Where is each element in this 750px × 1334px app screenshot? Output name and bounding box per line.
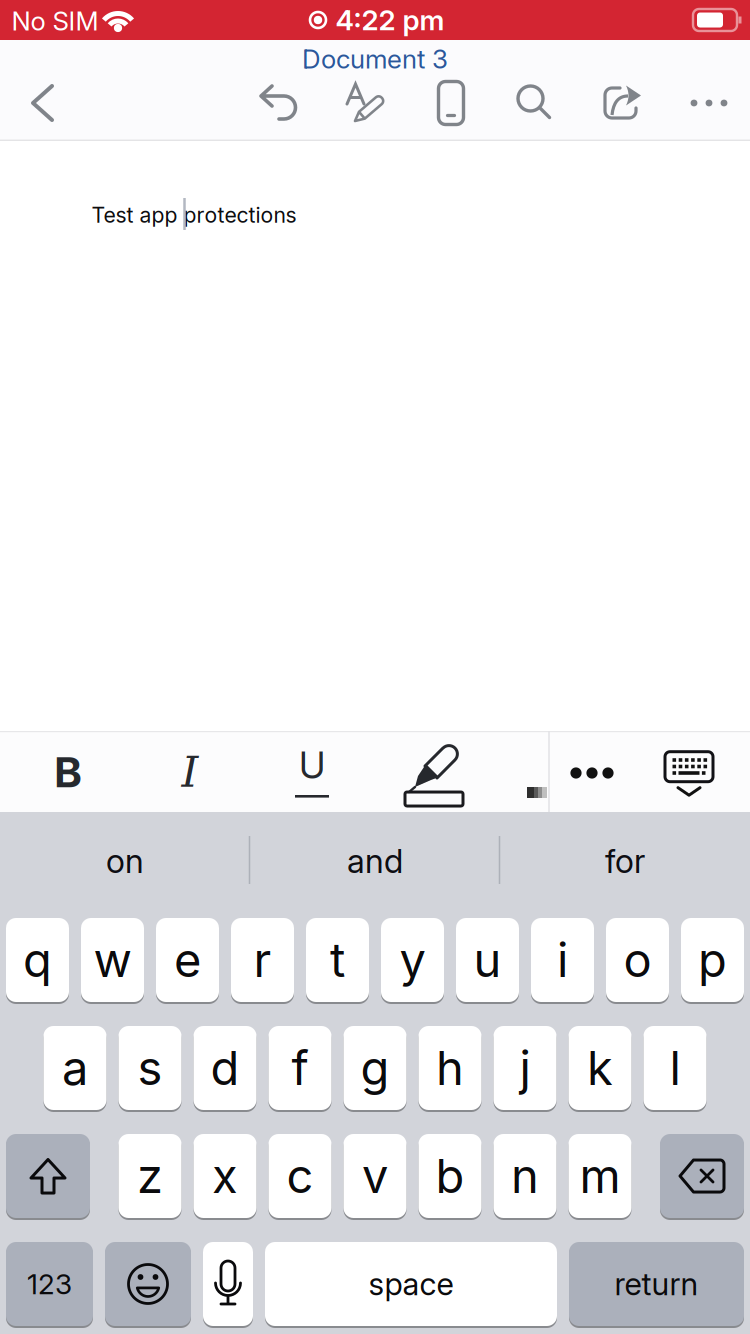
staticText: for: [605, 841, 645, 881]
staticText: d: [210, 1040, 239, 1096]
button[interactable]: [690, 99, 728, 107]
button[interactable]: m: [568, 1134, 631, 1220]
staticText: y: [399, 932, 425, 988]
staticText: t: [330, 932, 345, 988]
staticText: No SIM: [11, 5, 98, 37]
button[interactable]: B: [28, 737, 108, 807]
staticText: f: [291, 1040, 308, 1096]
staticText: Test app protections: [91, 202, 296, 228]
staticText: e: [174, 932, 201, 988]
button[interactable]: d: [193, 1026, 256, 1112]
staticText: k: [587, 1040, 613, 1096]
staticText: m: [579, 1148, 620, 1204]
button[interactable]: j: [493, 1026, 556, 1112]
button[interactable]: f: [268, 1026, 331, 1112]
button[interactable]: o: [606, 918, 669, 1004]
button[interactable]: [438, 81, 463, 124]
button[interactable]: U: [272, 737, 352, 807]
staticText: q: [23, 932, 52, 988]
button[interactable]: r: [231, 918, 294, 1004]
staticText: 4:22 pm: [335, 3, 444, 37]
button[interactable]: s: [118, 1026, 181, 1112]
button[interactable]: x: [193, 1134, 256, 1220]
staticText: B: [54, 747, 81, 797]
staticText: b: [435, 1148, 464, 1204]
button[interactable]: for: [505, 817, 745, 905]
button[interactable]: b: [418, 1134, 481, 1220]
button[interactable]: [105, 1242, 191, 1328]
staticText: a: [62, 1040, 88, 1096]
button[interactable]: w: [81, 918, 144, 1004]
staticText: c: [286, 1148, 313, 1204]
staticText: p: [698, 932, 727, 988]
staticText: 123: [27, 1267, 72, 1301]
button[interactable]: a: [43, 1026, 106, 1112]
staticText: and: [347, 841, 403, 881]
button[interactable]: i: [531, 918, 594, 1004]
button[interactable]: return: [569, 1242, 744, 1328]
button[interactable]: [6, 1134, 90, 1220]
staticText: space: [368, 1265, 453, 1303]
button[interactable]: [30, 80, 56, 126]
staticText: u: [473, 932, 501, 988]
staticText: I: [181, 747, 198, 797]
button[interactable]: [660, 1134, 744, 1220]
staticText: on: [106, 841, 144, 881]
staticText: r: [253, 932, 271, 988]
button[interactable]: q: [6, 918, 69, 1004]
button[interactable]: n: [493, 1134, 556, 1220]
button[interactable]: on: [5, 817, 245, 905]
staticText: g: [360, 1040, 389, 1096]
button[interactable]: c: [268, 1134, 331, 1220]
staticText: w: [93, 932, 131, 988]
button[interactable]: [203, 1242, 253, 1328]
staticText: n: [511, 1148, 539, 1204]
staticText: i: [557, 932, 568, 988]
staticText: return: [614, 1265, 698, 1303]
button[interactable]: [603, 85, 641, 121]
button[interactable]: v: [343, 1134, 406, 1220]
button[interactable]: I: [150, 737, 230, 807]
button[interactable]: l: [643, 1026, 706, 1112]
staticText: x: [212, 1148, 238, 1204]
button[interactable]: h: [418, 1026, 481, 1112]
button[interactable]: t: [306, 918, 369, 1004]
staticText: Document 3: [302, 43, 448, 75]
button[interactable]: k: [568, 1026, 631, 1112]
staticText: l: [669, 1040, 680, 1096]
staticText: o: [623, 932, 651, 988]
button[interactable]: [516, 84, 551, 119]
staticText: j: [519, 1040, 530, 1096]
button[interactable]: y: [381, 918, 444, 1004]
button[interactable]: [346, 81, 386, 125]
button[interactable]: space: [265, 1242, 557, 1328]
button[interactable]: [260, 83, 300, 123]
button[interactable]: [665, 752, 713, 796]
button[interactable]: [403, 738, 465, 808]
button[interactable]: e: [156, 918, 219, 1004]
button[interactable]: u: [456, 918, 519, 1004]
button[interactable]: g: [343, 1026, 406, 1112]
staticText: z: [137, 1148, 163, 1204]
button[interactable]: z: [118, 1134, 181, 1220]
button[interactable]: [570, 767, 614, 779]
button[interactable]: 123: [6, 1242, 93, 1328]
button[interactable]: p: [681, 918, 744, 1004]
button[interactable]: and: [255, 817, 495, 905]
staticText: v: [362, 1148, 388, 1204]
staticText: h: [436, 1040, 464, 1096]
staticText: U: [299, 743, 325, 787]
staticText: s: [137, 1040, 162, 1096]
